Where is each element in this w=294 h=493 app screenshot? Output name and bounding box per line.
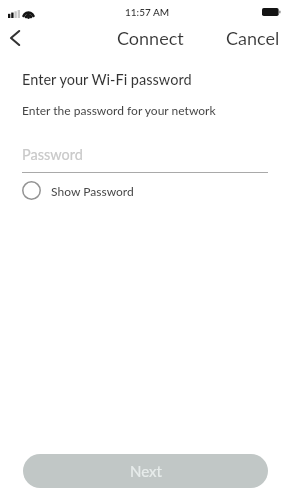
staticText: Show Password [51,184,134,198]
staticText: Password [22,146,83,163]
button[interactable]: Next [23,454,268,488]
staticText: Enter the password for your network [22,103,216,117]
button[interactable]: Cancel [226,27,280,49]
staticText: Cancel [226,27,280,49]
staticText: Next [130,462,162,480]
staticText: Connect [117,27,184,49]
button[interactable]: Show Password [22,181,134,200]
staticText: 11:57 AM [125,6,170,18]
button[interactable]: Back [1,24,29,52]
staticText: Enter your Wi-Fi password [22,71,192,88]
